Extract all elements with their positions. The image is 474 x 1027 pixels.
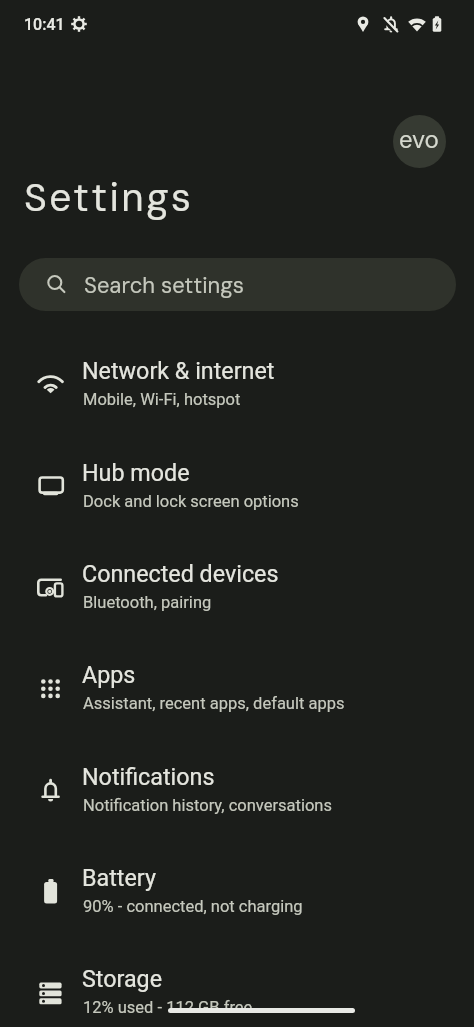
- button[interactable]: Search settings: [19, 258, 456, 311]
- button[interactable]: Battery: [0, 842, 474, 943]
- button[interactable]: Connected devices: [0, 538, 474, 639]
- button[interactable]: Hub mode: [0, 437, 474, 538]
- staticText: Dock and lock screen options: [83, 492, 299, 511]
- staticText: Storage: [82, 965, 163, 992]
- staticText: evo: [399, 124, 439, 155]
- staticText: Mobile, Wi-Fi, hotspot: [83, 390, 241, 409]
- button[interactable]: Network & internet: [0, 335, 474, 436]
- staticText: Bluetooth, pairing: [83, 593, 212, 612]
- staticText: Hub mode: [82, 459, 190, 486]
- staticText: Notifications: [82, 763, 215, 790]
- button[interactable]: Apps: [0, 639, 474, 740]
- staticText: Apps: [82, 661, 136, 688]
- staticText: Battery: [82, 864, 156, 891]
- staticText: Network & internet: [82, 357, 275, 384]
- staticText: Settings: [24, 172, 194, 223]
- staticText: 10:41: [24, 15, 65, 34]
- staticText: Assistant, recent apps, default apps: [83, 694, 345, 713]
- staticText: 90% - connected, not charging: [83, 897, 303, 916]
- staticText: Connected devices: [82, 560, 279, 587]
- button[interactable]: evo: [393, 115, 446, 168]
- staticText: 12% used - 112 GB free: [83, 998, 253, 1017]
- staticText: Notification history, conversations: [83, 796, 332, 815]
- staticText: Search settings: [84, 271, 245, 300]
- button[interactable]: Notifications: [0, 741, 474, 842]
- button[interactable]: Storage: [0, 943, 474, 1027]
